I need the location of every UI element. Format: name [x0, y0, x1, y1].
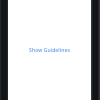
- button[interactable]: Show Guidelines: [26, 45, 73, 56]
- staticText: Show Guidelines: [29, 47, 70, 54]
